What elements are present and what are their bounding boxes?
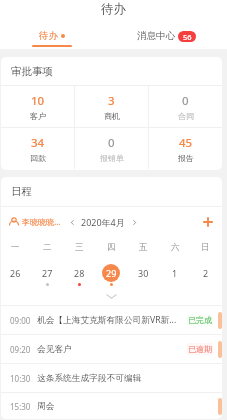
staticText: 四	[107, 242, 116, 253]
staticText: 机会【上海艾克斯有限公司新VR新...	[37, 314, 177, 326]
staticText: 已完成	[188, 315, 212, 325]
button[interactable]: Add event	[198, 212, 218, 232]
staticText: 日程	[11, 185, 32, 198]
staticText: 六	[171, 242, 180, 253]
button[interactable]: 0	[149, 86, 222, 127]
button[interactable]: Next month	[129, 217, 139, 227]
staticText: 报销单	[100, 153, 124, 163]
button[interactable]: 27	[31, 258, 63, 288]
staticText: 1	[172, 267, 178, 279]
staticText: 27	[42, 267, 53, 279]
staticText: 29	[106, 267, 117, 279]
button[interactable]: 15:30	[1, 393, 222, 419]
button[interactable]: 09:20	[1, 335, 222, 363]
staticText: 09:20	[10, 344, 31, 355]
staticText: 待办	[39, 30, 58, 42]
staticText: 三	[75, 242, 84, 253]
staticText: 56	[183, 32, 192, 42]
staticText: 一	[11, 242, 20, 253]
staticText: 34	[31, 135, 45, 151]
button[interactable]: 28	[63, 258, 95, 288]
staticText: 商机	[104, 111, 120, 121]
staticText: 会见客户	[37, 344, 72, 355]
staticText: 周会	[37, 401, 55, 412]
staticText: 26	[10, 267, 21, 279]
staticText: 这条系统生成字段不可编辑	[37, 373, 142, 384]
staticText: 待办	[101, 1, 126, 17]
button[interactable]: 2	[191, 258, 220, 288]
button[interactable]: 3	[75, 86, 148, 127]
button[interactable]: 29	[95, 258, 127, 288]
staticText: 09:00	[10, 315, 31, 326]
button[interactable]: 34	[1, 128, 74, 169]
staticText: 28	[74, 267, 85, 279]
button[interactable]: 0	[75, 128, 148, 169]
staticText: 10	[31, 93, 45, 109]
staticText: 五	[139, 242, 148, 253]
button[interactable]: 1	[159, 258, 191, 288]
staticText: 0	[108, 135, 115, 151]
staticText: 2020年4月	[81, 216, 125, 228]
staticText: 2	[203, 267, 209, 279]
button[interactable]: Previous month	[67, 217, 77, 227]
staticText: 审批事项	[11, 65, 53, 78]
staticText: 客户	[30, 111, 46, 121]
staticText: 日	[201, 242, 210, 253]
button[interactable]: 26	[1, 258, 31, 288]
button[interactable]: 45	[149, 128, 222, 169]
staticText: 3	[108, 93, 115, 109]
button[interactable]: 消息中心	[105, 30, 227, 52]
button[interactable]: 09:00	[1, 306, 222, 334]
staticText: 10:30	[10, 373, 31, 384]
staticText: 45	[179, 135, 193, 151]
staticText: 李晓晓晓...	[22, 216, 61, 227]
button[interactable]: 待办	[0, 30, 104, 52]
staticText: 回款	[30, 153, 46, 163]
button[interactable]: 李晓晓晓...	[9, 216, 61, 227]
staticText: 报告	[178, 153, 194, 163]
staticText: 合同	[178, 111, 194, 121]
staticText: 15:30	[10, 401, 31, 412]
staticText: 已逾期	[188, 344, 212, 354]
staticText: 消息中心	[137, 30, 175, 42]
button[interactable]: 10	[1, 86, 74, 127]
staticText: 30	[138, 267, 149, 279]
button[interactable]: 30	[127, 258, 159, 288]
button[interactable]: 10:30	[1, 364, 222, 392]
staticText: 二	[43, 242, 52, 253]
staticText: 0	[182, 93, 189, 109]
